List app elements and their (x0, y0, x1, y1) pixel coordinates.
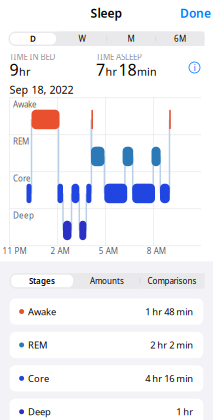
button[interactable]: Comparisons (140, 273, 205, 289)
staticText: Core (13, 173, 31, 184)
staticText: hr (105, 65, 116, 79)
staticText: 2 hr 2 min (150, 339, 193, 351)
staticText: Stages (29, 276, 55, 286)
staticText: min (137, 65, 157, 79)
button[interactable]: Core (10, 365, 203, 391)
staticText: Core (28, 372, 49, 385)
staticText: 1 hr (176, 406, 193, 418)
staticText: Sleep (90, 5, 122, 21)
staticText: Deep (13, 210, 34, 221)
button[interactable]: Deep (10, 399, 203, 420)
staticText: hr (19, 65, 30, 79)
staticText: M (127, 33, 134, 44)
staticText: 9 (9, 59, 18, 80)
button[interactable]: Stages (10, 273, 75, 289)
staticText: Comparisons (148, 276, 197, 286)
staticText: Awake (13, 99, 37, 110)
staticText: TIME ASLEEP (96, 51, 142, 62)
staticText: Awake (28, 305, 56, 318)
button[interactable]: D (8, 31, 57, 46)
staticText: REM (28, 339, 47, 351)
staticText: 1 hr 48 min (145, 305, 193, 318)
staticText: Sep 18, 2022 (9, 82, 73, 97)
staticText: TIME IN BED (9, 51, 55, 62)
staticText: 18 (118, 59, 136, 80)
button[interactable]: 6M (155, 31, 204, 46)
button[interactable]: REM (10, 332, 203, 358)
staticText: 5 AM (99, 245, 118, 256)
staticText: Done (180, 5, 211, 21)
staticText: D (30, 33, 36, 44)
staticText: 11 PM (2, 245, 26, 256)
staticText: 6M (174, 33, 186, 44)
button[interactable]: About sleep data (189, 62, 200, 73)
staticText: 2 AM (51, 245, 70, 256)
staticText: 7 (96, 59, 105, 80)
staticText: W (78, 33, 85, 44)
button[interactable]: W (57, 31, 106, 46)
staticText: i (193, 61, 195, 74)
staticText: REM (13, 136, 29, 147)
staticText: Deep (28, 406, 51, 418)
button[interactable]: Amounts (75, 273, 140, 289)
button[interactable]: Done (172, 4, 213, 22)
staticText: 4 hr 16 min (145, 372, 193, 385)
staticText: 8 AM (147, 245, 166, 256)
button[interactable]: Awake (10, 298, 203, 325)
button[interactable]: M (106, 31, 155, 46)
staticText: Amounts (90, 276, 124, 286)
